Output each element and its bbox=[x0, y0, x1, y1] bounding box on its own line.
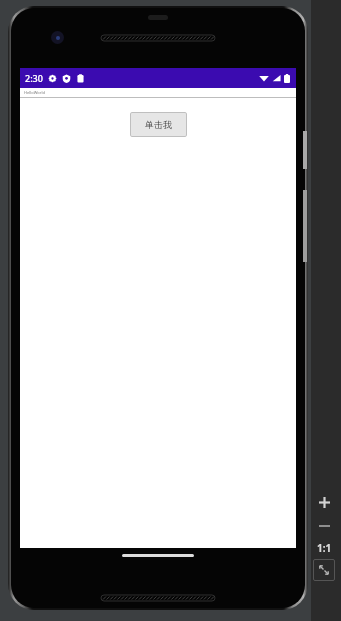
staticText: 单击我 bbox=[145, 119, 172, 130]
button[interactable]: 单击我 bbox=[130, 112, 187, 137]
button[interactable]: Zoom out bbox=[311, 515, 337, 537]
staticText: HelloWorld bbox=[24, 90, 45, 95]
button[interactable]: 1:1 bbox=[311, 537, 337, 559]
button[interactable]: Zoom in bbox=[311, 489, 337, 515]
button[interactable]: Fit to screen bbox=[313, 559, 335, 581]
staticText: 1:1 bbox=[317, 541, 332, 555]
staticText: 2:30 bbox=[25, 72, 43, 84]
